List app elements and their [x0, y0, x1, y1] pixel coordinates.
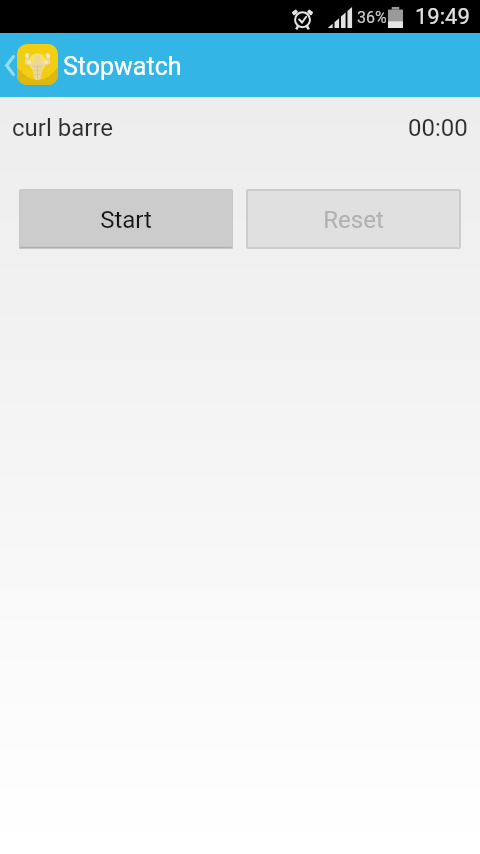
staticText: 00:00	[408, 114, 468, 142]
button[interactable]: Start	[19, 189, 233, 249]
staticText: 36%	[357, 8, 387, 27]
staticText: Stopwatch	[63, 52, 182, 81]
staticText: Start	[100, 206, 152, 234]
staticText: 19:49	[415, 4, 470, 30]
staticText: Reset	[323, 206, 384, 234]
button[interactable]: Navigate up	[0, 33, 480, 97]
button[interactable]: Reset	[246, 189, 461, 249]
staticText: curl barre	[12, 114, 114, 142]
